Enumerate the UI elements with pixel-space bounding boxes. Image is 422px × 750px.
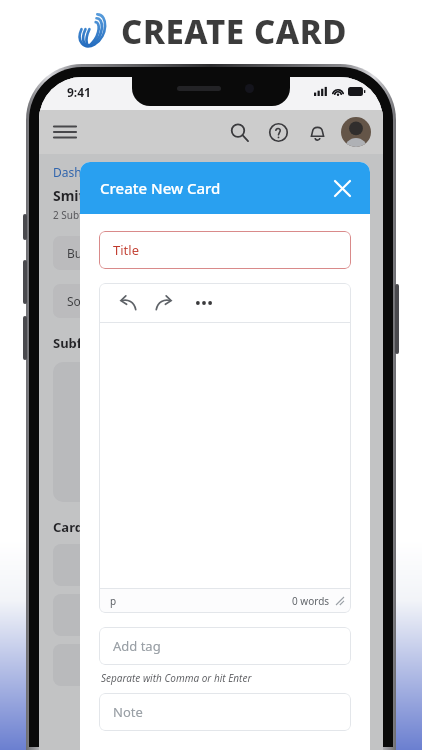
staticText: p bbox=[110, 594, 117, 608]
button[interactable]: Redo bbox=[152, 292, 174, 314]
button[interactable]: Add tag bbox=[99, 627, 351, 665]
button[interactable]: Profile bbox=[341, 117, 371, 147]
button[interactable]: Notifications bbox=[305, 120, 329, 144]
button[interactable]: Help bbox=[266, 120, 290, 144]
staticText: Smith Case bbox=[53, 186, 131, 205]
staticText: Separate with Comma or hit Enter bbox=[101, 671, 252, 685]
staticText: Title bbox=[113, 241, 139, 259]
button[interactable]: Close bbox=[328, 174, 356, 202]
button[interactable]: Note bbox=[99, 693, 351, 731]
staticText: 2 Subfolders bbox=[53, 208, 112, 222]
staticText: 0 words bbox=[292, 594, 330, 608]
staticText: Add tag bbox=[113, 637, 161, 655]
staticText: Bundle bbox=[67, 245, 107, 261]
staticText: Sort bbox=[67, 293, 91, 309]
staticText: Note bbox=[113, 703, 143, 721]
staticText: Dashboard bbox=[53, 164, 116, 180]
staticText: Cards bbox=[53, 518, 90, 536]
button[interactable]: Add bbox=[333, 162, 369, 198]
button[interactable]: Undo bbox=[117, 292, 139, 314]
button[interactable]: Menu bbox=[54, 121, 76, 143]
staticText: Create New Card bbox=[100, 178, 221, 198]
staticText: Subfolders bbox=[53, 334, 123, 352]
button[interactable]: More options bbox=[193, 292, 215, 314]
button[interactable]: Bundle bbox=[53, 236, 369, 270]
staticText: CREATE CARD bbox=[121, 9, 348, 54]
button[interactable]: Title bbox=[99, 231, 351, 269]
staticText: 9:41 bbox=[67, 84, 91, 100]
button[interactable]: Search bbox=[227, 120, 251, 144]
button[interactable]: Sort bbox=[53, 284, 369, 318]
